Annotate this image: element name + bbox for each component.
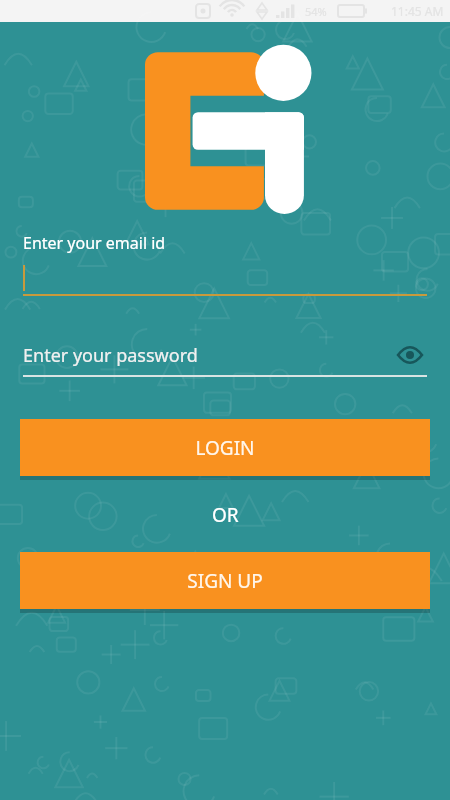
button[interactable]: LOGIN <box>20 419 430 476</box>
button[interactable]: SIGN UP <box>20 552 430 609</box>
staticText: 11:45 AM <box>391 3 444 19</box>
staticText: 54% <box>305 4 327 19</box>
staticText: Enter your password <box>23 343 198 368</box>
staticText: SIGN UP <box>187 568 263 594</box>
button[interactable]: Show password <box>393 340 427 370</box>
staticText: Enter your email id <box>23 232 166 254</box>
staticText: LOGIN <box>195 435 255 461</box>
staticText: OR <box>212 502 239 528</box>
